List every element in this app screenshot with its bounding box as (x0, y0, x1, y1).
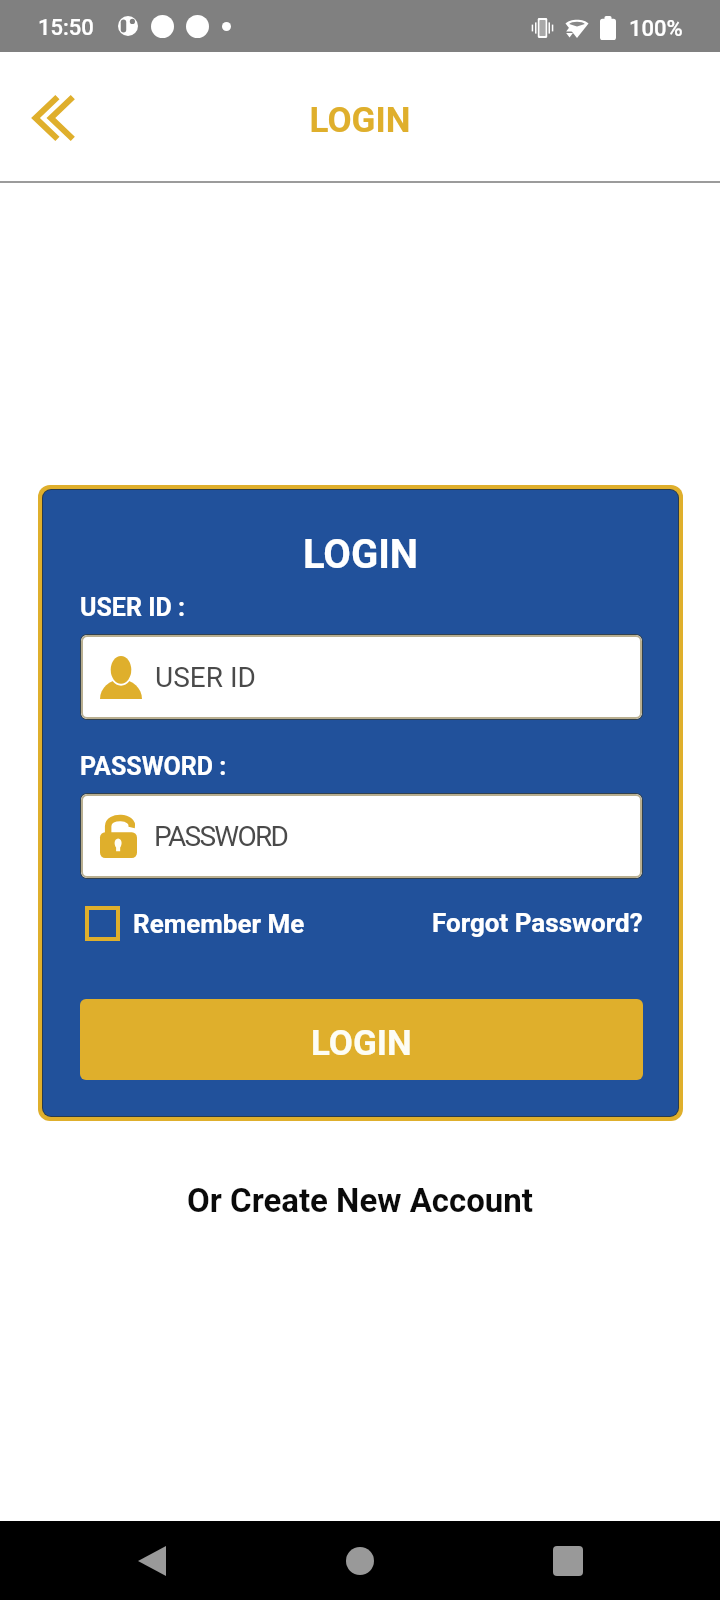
staticText: 15:50 (38, 15, 94, 41)
staticText: LOGIN (311, 1023, 412, 1064)
button[interactable]: LOGIN (80, 999, 643, 1080)
staticText: PASSWORD : (80, 752, 227, 781)
button[interactable]: Forgot Password? (432, 908, 643, 938)
staticText: Remember Me (133, 909, 305, 939)
button[interactable]: Back (114, 1523, 190, 1599)
staticText: 100% (629, 16, 683, 42)
button[interactable]: Or Create New Account (0, 1181, 720, 1220)
staticText: PASSWORD (154, 820, 288, 853)
button[interactable]: Remember Me (80, 906, 305, 941)
staticText: LOGIN (0, 100, 720, 141)
staticText: USER ID (155, 661, 256, 694)
button[interactable]: USER ID (81, 635, 642, 719)
button[interactable]: Back (16, 82, 88, 154)
staticText: USER ID : (80, 593, 185, 622)
button[interactable]: PASSWORD (81, 794, 642, 878)
staticText: LOGIN (43, 531, 678, 578)
button[interactable]: Recent apps (530, 1523, 606, 1599)
button[interactable]: Home (322, 1523, 398, 1599)
